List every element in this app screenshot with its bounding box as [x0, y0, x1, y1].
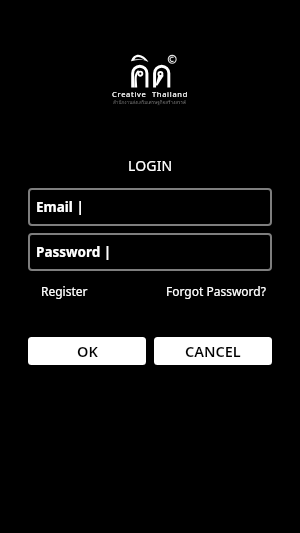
- other: Creative Thailand logo: [115, 52, 185, 90]
- button[interactable]: Password |: [28, 233, 272, 271]
- staticText: Password |: [36, 243, 112, 261]
- staticText: CANCEL: [185, 341, 241, 361]
- staticText: สำนักงานส่งเสริมเศรษฐกิจสร้างสรรค์: [113, 99, 187, 106]
- button[interactable]: CANCEL: [154, 337, 272, 365]
- staticText: OK: [77, 341, 98, 361]
- button[interactable]: OK: [28, 337, 146, 365]
- staticText: Email |: [36, 198, 84, 216]
- button[interactable]: Forgot Password?: [160, 279, 272, 303]
- staticText: Forgot Password?: [166, 283, 266, 299]
- button[interactable]: Register: [30, 279, 99, 303]
- button[interactable]: Email |: [28, 188, 272, 226]
- staticText: Register: [41, 283, 88, 299]
- staticText: LOGIN: [128, 156, 173, 175]
- staticText: Creative Thailand: [112, 89, 189, 99]
